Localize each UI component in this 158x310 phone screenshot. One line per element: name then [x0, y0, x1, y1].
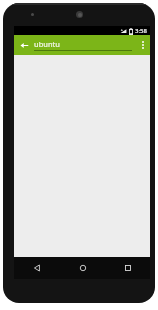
button[interactable]: Home [60, 257, 105, 279]
button[interactable]: ubuntu [34, 39, 132, 51]
staticText: ubuntu [34, 39, 60, 49]
button[interactable]: Navigate up [14, 35, 34, 55]
staticText: 3:58 [135, 27, 147, 35]
button[interactable]: Recent apps [105, 257, 150, 279]
button[interactable]: Back [14, 257, 60, 279]
button[interactable]: More options [136, 35, 150, 55]
